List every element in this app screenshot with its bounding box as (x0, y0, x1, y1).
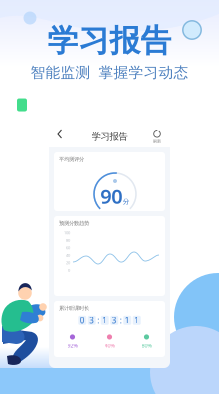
staticText: 分 (123, 197, 130, 206)
staticText: 预测分数趋势 (59, 220, 89, 227)
staticText: : (120, 315, 122, 326)
staticText: 0 (68, 268, 70, 273)
staticText: 智能监测 掌握学习动态 (30, 64, 188, 82)
button[interactable]: Back (55, 126, 65, 147)
staticText: 100 (64, 230, 70, 235)
staticText: 学习报告 (47, 22, 171, 60)
staticText: 1 (125, 315, 130, 326)
staticText: 平均测评分 (59, 156, 84, 163)
staticText: 学习报告 (91, 131, 127, 142)
button[interactable]: Refresh (150, 126, 164, 147)
staticText: 3 (89, 315, 94, 326)
staticText: 0 (80, 315, 85, 326)
staticText: 92% (67, 342, 77, 349)
staticText: 40 (66, 253, 70, 258)
staticText: 90 (100, 183, 122, 209)
staticText: 60 (66, 245, 70, 250)
staticText: 1 (102, 315, 107, 326)
staticText: 40% (104, 342, 114, 349)
staticText: : (97, 315, 99, 326)
staticText: 刷新 (153, 139, 161, 144)
staticText: 1 (134, 315, 139, 326)
staticText: 20 (66, 260, 70, 265)
staticText: 3 (112, 315, 117, 326)
staticText: 80 (66, 238, 70, 243)
staticText: 80% (141, 342, 151, 349)
staticText: 累计听课时长 (59, 305, 89, 312)
